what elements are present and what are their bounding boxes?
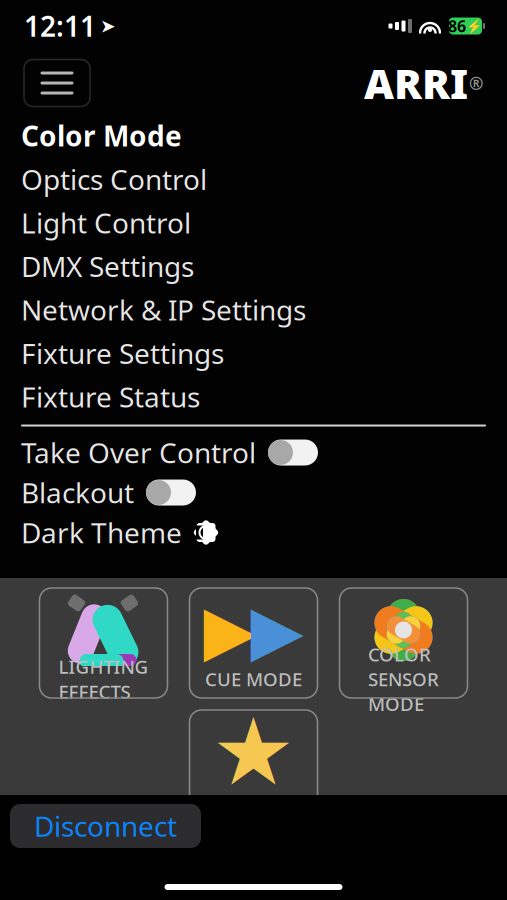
button[interactable]: Menu [24, 59, 90, 106]
button[interactable]: COLOR SENSOR MODE [339, 588, 467, 698]
button[interactable]: Color Mode [0, 114, 507, 157]
staticText: CUE MODE [205, 667, 302, 691]
button[interactable]: Disconnect [10, 804, 201, 848]
staticText: Optics Control [21, 161, 207, 198]
staticText: LIGHTING EFFECTS [58, 654, 148, 704]
staticText: ⚡ [466, 18, 483, 34]
button[interactable]: Blackout [0, 472, 507, 512]
staticText: Fixture Status [21, 378, 200, 415]
button[interactable]: Take Over Control [0, 432, 507, 472]
staticText: DMX Settings [21, 248, 194, 285]
staticText: Network & IP Settings [21, 291, 306, 328]
staticText: Disconnect [34, 807, 177, 845]
staticText: 12:11 [24, 7, 96, 45]
staticText: ➤ [100, 15, 116, 37]
button[interactable]: Fixture Settings [0, 331, 507, 375]
button[interactable]: Fixture Status [0, 375, 507, 418]
button[interactable]: ▶ [189, 588, 317, 698]
staticText: 86 [448, 15, 466, 37]
button[interactable]: DMX Settings [0, 244, 507, 288]
staticText: COLOR SENSOR MODE [368, 642, 439, 716]
staticText: ▶ [203, 591, 256, 669]
staticText: ▶ [250, 591, 303, 669]
staticText: ARRI [364, 56, 468, 110]
button[interactable]: Network & IP Settings [0, 288, 507, 331]
staticText: Fixture Settings [21, 335, 224, 372]
staticText: Color Mode [21, 117, 182, 154]
button[interactable]: Light Control [0, 201, 507, 244]
button[interactable]: Optics Control [0, 157, 507, 201]
button[interactable]: ★ [189, 710, 317, 820]
button[interactable]: Dark Theme [0, 512, 507, 552]
staticText: ★ [211, 699, 295, 805]
staticText: ® [469, 71, 483, 94]
button[interactable]: LIGHTING EFFECTS [39, 588, 167, 698]
staticText: Take Over Control [21, 434, 256, 471]
staticText: Light Control [21, 204, 191, 241]
staticText: Dark Theme [21, 514, 182, 551]
staticText: Blackout [21, 474, 134, 511]
